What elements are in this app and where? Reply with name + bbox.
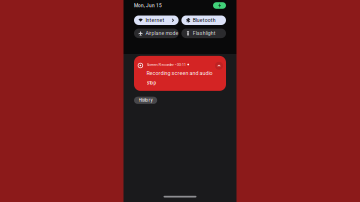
button[interactable]: Airplane mode (134, 29, 179, 38)
staticText: • (175, 62, 176, 67)
button[interactable]: Stop (147, 80, 167, 86)
button[interactable]: Internet (134, 15, 179, 25)
staticText: Screen Recorder (147, 62, 174, 67)
staticText: Flashlight (193, 30, 216, 36)
button[interactable]: History (134, 97, 157, 104)
staticText: Stop (147, 80, 157, 86)
staticText: Recording screen and audio (147, 70, 213, 76)
staticText: History (139, 98, 153, 103)
staticText: Bluetooth (193, 17, 216, 23)
staticText: 00:11 (177, 62, 186, 67)
staticText: Mon, Jun 15 (134, 3, 162, 8)
staticText: Airplane mode (145, 30, 178, 36)
button[interactable]: Bluetooth (181, 15, 226, 25)
staticText: Internet (145, 17, 164, 23)
button[interactable]: Collapse notification (215, 62, 223, 70)
button[interactable]: Flashlight (181, 29, 226, 38)
